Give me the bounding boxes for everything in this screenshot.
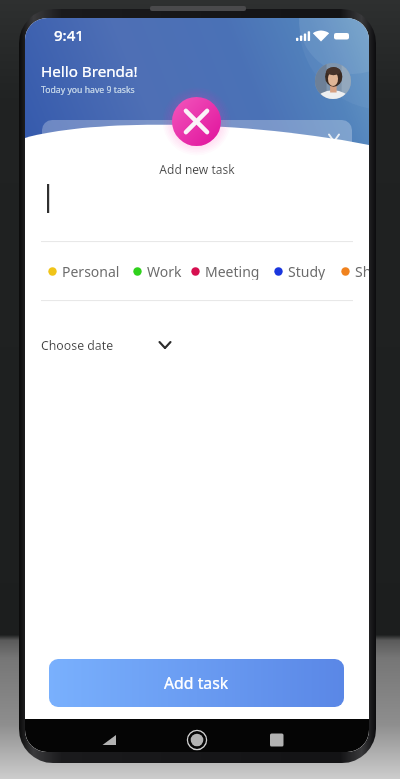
button[interactable]: Work <box>133 262 182 280</box>
button[interactable]: Shopping <box>341 262 369 280</box>
staticText: Add new task <box>25 161 369 177</box>
button[interactable]: Close <box>172 97 221 146</box>
staticText: Hello Brenda! <box>41 61 138 82</box>
staticText: Meeting <box>205 262 260 280</box>
staticText: Study <box>288 262 326 280</box>
staticText: Choose date <box>41 337 114 354</box>
staticText: Add task <box>164 672 229 694</box>
button[interactable]: Add task <box>49 659 344 707</box>
staticText: Today you have 9 tasks <box>41 84 135 96</box>
staticText: 9:41 <box>54 25 84 45</box>
staticText: Work <box>147 262 182 280</box>
staticText: Personal <box>62 262 120 280</box>
button[interactable]: Meeting <box>191 262 260 280</box>
button[interactable]: Profile <box>315 63 351 99</box>
button[interactable]: Personal <box>48 262 120 280</box>
button[interactable]: Study <box>274 262 326 280</box>
staticText: Shopping <box>355 262 369 280</box>
